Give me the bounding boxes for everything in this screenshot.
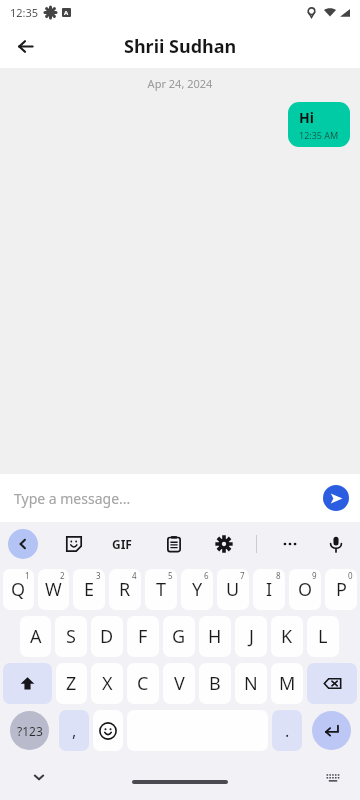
staticText: .	[285, 720, 290, 742]
staticText: C	[137, 671, 149, 696]
staticText: U	[226, 577, 240, 602]
staticText: I	[266, 577, 273, 602]
button[interactable]: Sticker	[58, 528, 90, 560]
staticText: 9	[312, 570, 317, 581]
staticText: 12:35 AM	[299, 129, 339, 141]
button[interactable]: S	[55, 616, 87, 657]
staticText: 3	[96, 570, 101, 581]
staticText: 0	[348, 570, 353, 581]
button[interactable]: Enter	[312, 711, 351, 750]
button[interactable]: Settings	[208, 528, 240, 560]
button[interactable]: F	[127, 616, 159, 657]
button[interactable]: Back	[6, 26, 46, 66]
button[interactable]: A	[20, 616, 51, 657]
button[interactable]: More	[274, 528, 306, 560]
staticText: V	[174, 671, 185, 696]
button[interactable]: Voice input	[320, 528, 352, 560]
staticText: G	[172, 624, 186, 649]
button[interactable]: Backspace	[307, 663, 357, 704]
staticText: X	[102, 671, 113, 696]
staticText: 6	[204, 570, 209, 581]
button[interactable]: D	[91, 616, 123, 657]
staticText: H	[208, 624, 222, 649]
staticText: M	[279, 671, 296, 696]
staticText: Q	[11, 577, 26, 602]
staticText: Type a message...	[14, 489, 131, 508]
staticText: P	[336, 577, 347, 602]
button[interactable]: I	[253, 569, 285, 610]
button[interactable]: Change keyboard	[320, 764, 346, 790]
button[interactable]: E	[73, 569, 105, 610]
button[interactable]: Y	[181, 569, 213, 610]
staticText: T	[156, 577, 167, 602]
staticText: Z	[66, 671, 77, 696]
button[interactable]: U	[217, 569, 249, 610]
staticText: A	[64, 9, 69, 17]
staticText: 8	[276, 570, 281, 581]
button[interactable]: Hide keyboard	[26, 764, 52, 790]
button[interactable]: Q	[3, 569, 34, 610]
button[interactable]: Z	[56, 663, 87, 704]
button[interactable]: L	[307, 616, 339, 657]
staticText: ?123	[17, 723, 43, 739]
button[interactable]: G	[163, 616, 195, 657]
staticText: A	[30, 624, 42, 649]
staticText: 2	[60, 570, 65, 581]
staticText: Apr 24, 2024	[0, 76, 360, 91]
button[interactable]: M	[271, 663, 303, 704]
staticText: 4	[132, 570, 137, 581]
button[interactable]: Shift	[3, 663, 52, 704]
staticText: F	[138, 624, 148, 649]
button[interactable]: P	[325, 569, 357, 610]
staticText: S	[66, 624, 76, 649]
staticText: Hi	[299, 108, 314, 127]
button[interactable]: B	[199, 663, 231, 704]
staticText: Y	[192, 577, 203, 602]
staticText: N	[244, 671, 258, 696]
button[interactable]: J	[235, 616, 267, 657]
button[interactable]: Send	[323, 485, 349, 511]
button[interactable]: C	[127, 663, 159, 704]
button[interactable]: V	[163, 663, 195, 704]
button[interactable]: H	[199, 616, 231, 657]
button[interactable]: N	[235, 663, 267, 704]
button[interactable]: Back	[8, 529, 38, 559]
button[interactable]: ,	[59, 710, 89, 751]
button[interactable]: K	[271, 616, 303, 657]
staticText: R	[119, 577, 131, 602]
button[interactable]: T	[145, 569, 177, 610]
staticText: Shrii Sudhan	[124, 34, 237, 59]
button[interactable]: .	[272, 710, 302, 751]
button[interactable]: W	[38, 569, 69, 610]
staticText: ,	[72, 720, 77, 742]
staticText: 7	[240, 570, 245, 581]
staticText: B	[209, 671, 221, 696]
staticText: 1	[25, 570, 30, 581]
button[interactable]: O	[289, 569, 321, 610]
staticText: L	[318, 624, 328, 649]
button[interactable]: Clipboard	[158, 528, 190, 560]
button[interactable]: Hi	[288, 102, 350, 147]
staticText: W	[45, 577, 62, 602]
staticText: E	[84, 577, 95, 602]
staticText: K	[281, 624, 293, 649]
button[interactable]: GIF	[106, 528, 138, 560]
staticText: 5	[168, 570, 173, 581]
button[interactable]: X	[91, 663, 123, 704]
staticText: 12:35	[10, 5, 39, 20]
button[interactable]: ?123	[10, 711, 49, 750]
staticText: O	[298, 577, 313, 602]
staticText: J	[249, 624, 254, 649]
staticText: GIF	[112, 536, 132, 552]
button[interactable]: R	[109, 569, 141, 610]
button[interactable]: Emoji	[93, 710, 123, 751]
staticText: D	[100, 624, 114, 649]
